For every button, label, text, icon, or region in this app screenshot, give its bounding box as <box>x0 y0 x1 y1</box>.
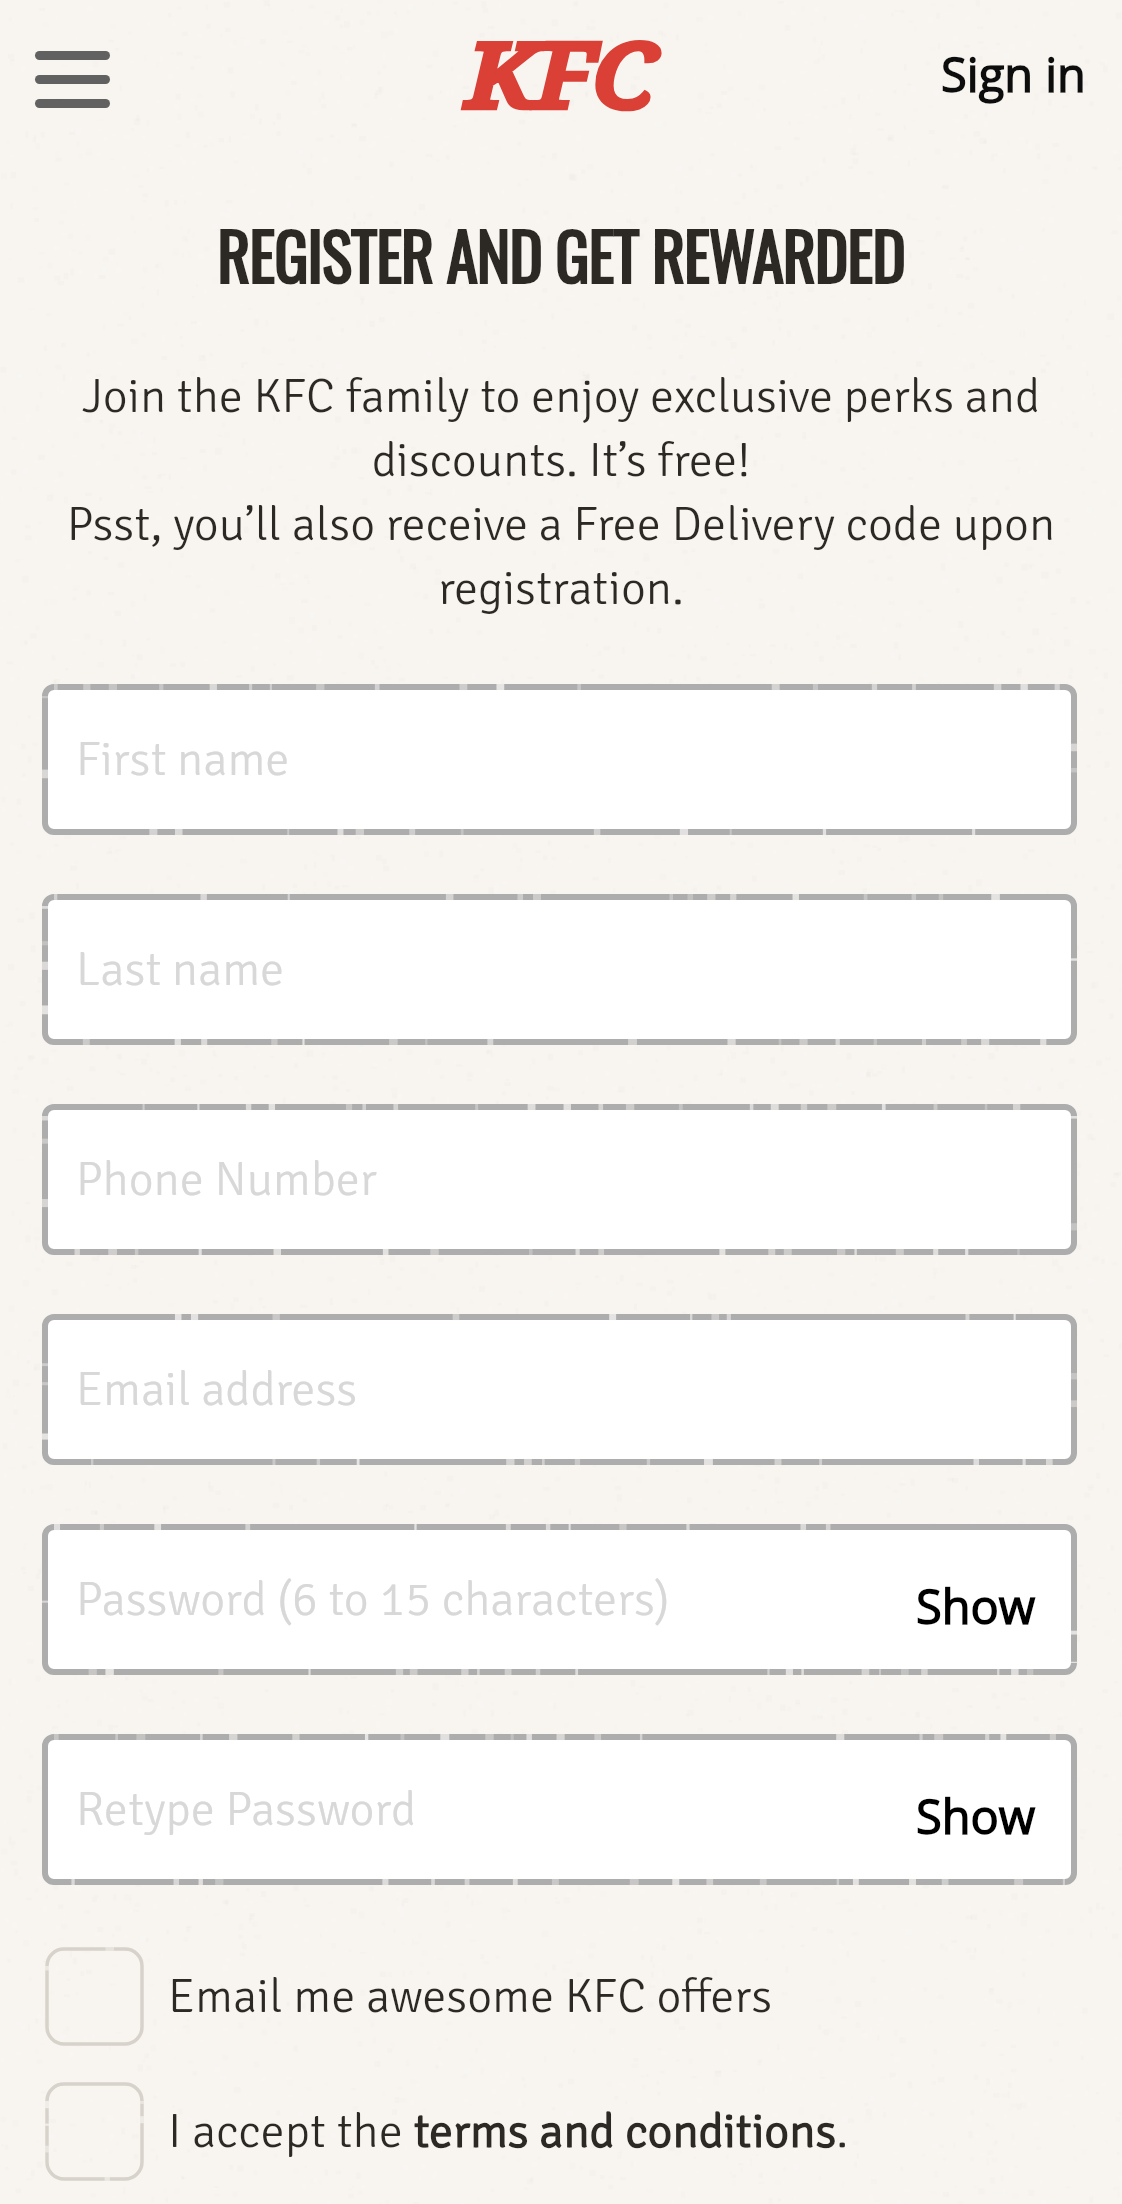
staticText: KFC <box>467 14 656 132</box>
staticText: Password (6 to 15 characters) <box>76 1570 670 1629</box>
button[interactable]: Show <box>916 1784 1036 1848</box>
button[interactable]: Phone Number <box>42 1104 1077 1255</box>
staticText: Email address <box>76 1360 358 1419</box>
staticText: Retype Password <box>76 1780 417 1839</box>
button[interactable]: Accept terms and conditions <box>45 2082 1078 2181</box>
staticText: REGISTER AND GET REWARDED <box>0 207 1122 302</box>
button[interactable]: Accept terms and conditions <box>45 2082 144 2181</box>
staticText: I accept the terms and conditions. <box>168 2102 849 2161</box>
staticText: Last name <box>76 940 285 999</box>
staticText: KFC <box>467 14 656 132</box>
staticText: Sign in <box>941 42 1086 106</box>
button[interactable]: Retype Password <box>42 1734 1077 1885</box>
button[interactable]: Sign in <box>941 42 1086 106</box>
button[interactable]: Toggle email offers <box>45 1947 1078 2046</box>
staticText: First name <box>76 730 290 789</box>
button[interactable]: Toggle email offers <box>45 1947 144 2046</box>
button[interactable]: Email address <box>42 1314 1077 1465</box>
staticText: Show <box>916 1574 1036 1638</box>
staticText: Join the KFC family to enjoy exclusive p… <box>48 367 1074 618</box>
staticText: Phone Number <box>76 1150 377 1209</box>
staticText: Show <box>916 1784 1036 1848</box>
button[interactable]: Last name <box>42 894 1077 1045</box>
button[interactable]: Password (6 to 15 characters) <box>42 1524 1077 1675</box>
staticText: Email me awesome KFC offers <box>168 1967 773 2026</box>
button[interactable]: Show <box>916 1574 1036 1638</box>
button[interactable]: Menu <box>35 47 110 112</box>
button[interactable]: First name <box>42 684 1077 835</box>
